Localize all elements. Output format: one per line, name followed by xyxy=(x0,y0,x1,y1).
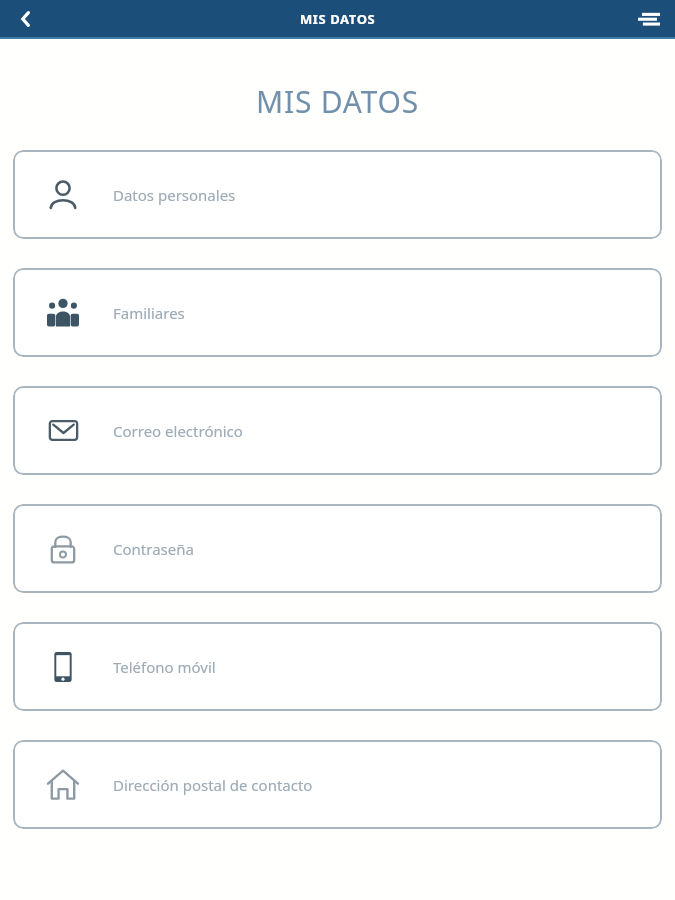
staticText: Correo electrónico xyxy=(113,421,243,441)
staticText: Dirección postal de contacto xyxy=(113,775,313,795)
button[interactable]: Menu xyxy=(629,0,669,37)
button[interactable]: Teléfono móvil xyxy=(13,622,662,711)
button[interactable]: Familiares xyxy=(13,268,662,357)
staticText: Datos personales xyxy=(113,185,236,205)
button[interactable]: Back xyxy=(6,0,46,37)
button[interactable]: Contraseña xyxy=(13,504,662,593)
button[interactable]: Dirección postal de contacto xyxy=(13,740,662,829)
button[interactable]: Datos personales xyxy=(13,150,662,239)
staticText: Familiares xyxy=(113,303,185,323)
button[interactable]: Correo electrónico xyxy=(13,386,662,475)
staticText: Contraseña xyxy=(113,539,194,559)
staticText: MIS DATOS xyxy=(300,10,376,28)
staticText: MIS DATOS xyxy=(0,81,675,122)
staticText: Teléfono móvil xyxy=(113,657,216,677)
